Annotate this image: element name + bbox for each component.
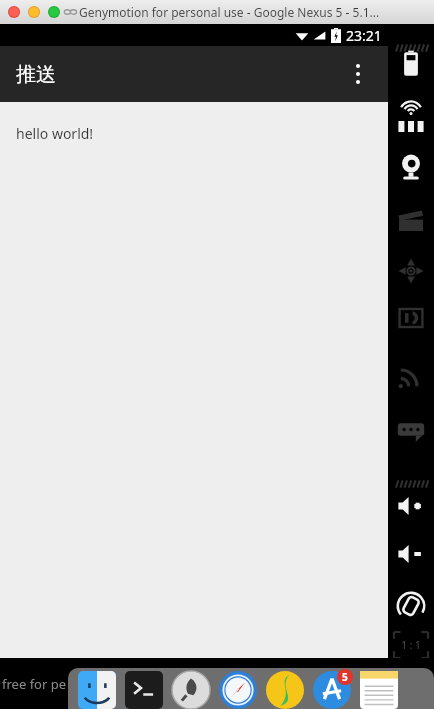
button[interactable]: Window button <box>8 6 20 18</box>
button[interactable]: Music <box>266 671 304 709</box>
button[interactable]: Emulator control <box>388 144 434 188</box>
staticText: 23:21 <box>346 26 382 45</box>
button[interactable]: Terminal <box>125 671 163 709</box>
button[interactable]: Emulator control <box>388 200 434 244</box>
button[interactable]: Emulator control <box>388 462 434 506</box>
button[interactable]: Emulator control <box>388 26 434 70</box>
button[interactable]: Emulator control <box>388 296 434 340</box>
staticText: 5 <box>342 670 348 684</box>
button[interactable]: Safari <box>219 671 257 709</box>
button[interactable]: More options <box>338 54 378 94</box>
button[interactable]: Window button <box>48 6 60 18</box>
staticText: 推送 <box>16 62 56 87</box>
button[interactable]: Emulator control <box>388 484 434 528</box>
staticText: hello world! <box>16 124 94 143</box>
staticText: Genymotion for personal use - Google Nex… <box>79 4 380 20</box>
button[interactable]: Window button <box>28 6 40 18</box>
button[interactable]: Launchpad <box>172 671 210 709</box>
button[interactable]: Emulator control <box>388 249 434 293</box>
button[interactable]: App Store <box>313 671 351 709</box>
button[interactable]: Scale 1:1 <box>388 632 434 658</box>
button[interactable]: Emulator control <box>388 532 434 576</box>
button[interactable]: Notes <box>360 671 398 709</box>
button[interactable]: Emulator control <box>388 584 434 628</box>
button[interactable]: Emulator control <box>388 354 434 398</box>
button[interactable]: Emulator control <box>388 409 434 453</box>
staticText: 1 : 1 <box>401 638 421 652</box>
staticText: free for pe <box>2 675 67 693</box>
button[interactable]: Emulator control <box>388 42 434 86</box>
button[interactable]: Emulator control <box>388 96 434 140</box>
button[interactable]: Finder <box>78 671 116 709</box>
